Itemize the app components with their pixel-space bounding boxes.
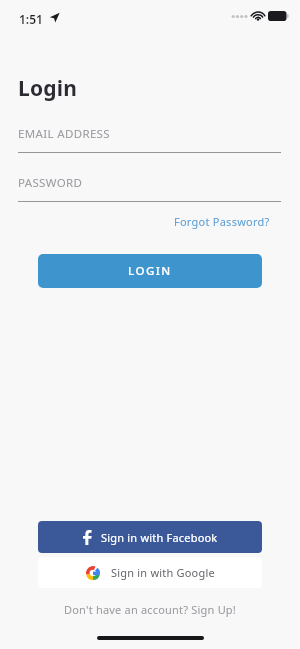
button[interactable]: Sign in with Facebook: [38, 521, 262, 553]
staticText: Forgot Password?: [174, 214, 270, 229]
staticText: Don't have an account? Sign Up!: [64, 602, 236, 617]
button[interactable]: Sign in with Google: [38, 557, 262, 588]
staticText: Sign in with Google: [111, 565, 215, 580]
staticText: LOGIN: [128, 263, 172, 279]
staticText: Sign in with Facebook: [101, 530, 218, 545]
staticText: 1:51: [19, 11, 43, 27]
staticText: PASSWORD: [18, 175, 83, 191]
button[interactable]: LOGIN: [38, 254, 262, 288]
button[interactable]: Forgot Password?: [158, 211, 270, 231]
staticText: Login: [18, 74, 78, 103]
staticText: EMAIL ADDRESS: [18, 126, 110, 142]
button[interactable]: Don't have an account? Sign Up!: [0, 599, 300, 619]
